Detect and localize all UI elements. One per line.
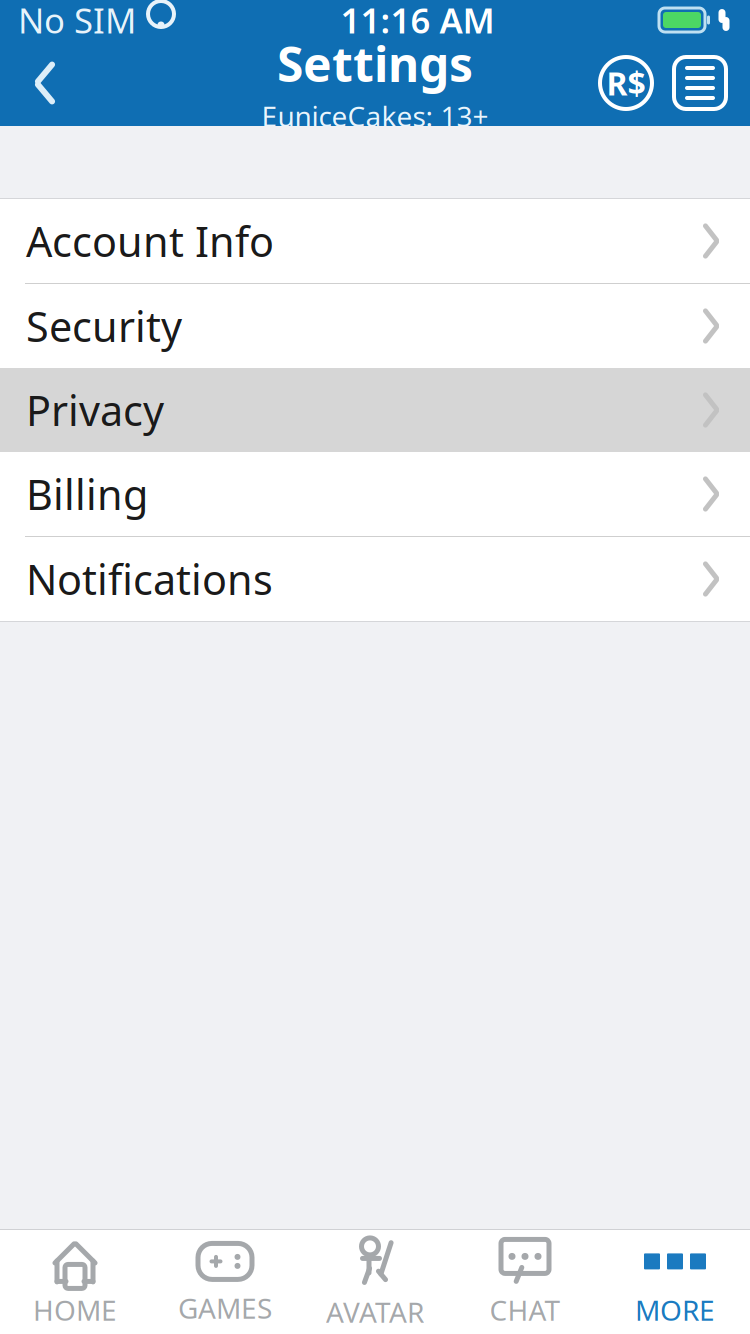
staticText: MORE	[635, 1291, 715, 1329]
staticText: Account Info	[26, 214, 274, 268]
staticText: AVATAR	[326, 1293, 424, 1331]
button[interactable]: Security	[0, 284, 750, 368]
button[interactable]: Account Info	[0, 199, 750, 283]
staticText: Settings	[277, 31, 473, 95]
staticText: No SIM	[18, 0, 136, 43]
staticText: GAMES	[178, 1289, 272, 1327]
staticText: EuniceCakes: 13+	[261, 97, 488, 134]
staticText: 11:16 AM	[340, 0, 494, 43]
staticText: Notifications	[26, 552, 273, 606]
button[interactable]: Menu	[662, 40, 738, 126]
button[interactable]: Back	[0, 40, 90, 126]
staticText: HOME	[33, 1291, 117, 1329]
button[interactable]: Notifications	[0, 537, 750, 621]
button[interactable]: GAMES	[150, 1230, 300, 1334]
button[interactable]: HOME	[0, 1230, 150, 1334]
staticText: Privacy	[26, 383, 164, 437]
button[interactable]: CHAT	[450, 1230, 600, 1334]
button[interactable]: Billing	[0, 452, 750, 536]
staticText: CHAT	[489, 1291, 560, 1329]
button[interactable]: Robux	[590, 40, 662, 126]
staticText: Security	[26, 299, 182, 353]
staticText: R$	[606, 62, 645, 104]
button[interactable]: MORE	[600, 1230, 750, 1334]
button[interactable]: AVATAR	[300, 1230, 450, 1334]
button[interactable]: Privacy	[0, 368, 750, 452]
staticText: Billing	[26, 467, 148, 521]
